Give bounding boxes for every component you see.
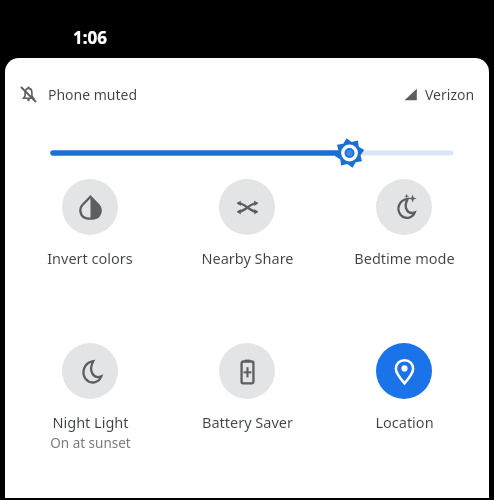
button[interactable]: Battery Saver [185, 343, 309, 432]
staticText: Battery Saver [202, 412, 293, 432]
staticText: Verizon [425, 85, 475, 104]
button[interactable]: Verizon [401, 81, 477, 108]
button[interactable]: Phone muted [17, 81, 140, 108]
staticText: On at sunset [50, 434, 131, 452]
staticText: Nearby Share [201, 248, 294, 268]
button[interactable]: Location [342, 343, 466, 432]
staticText: Invert colors [47, 248, 133, 268]
button[interactable]: Bedtime mode [342, 179, 466, 268]
staticText: Night Light [52, 412, 129, 432]
button[interactable]: Nearby Share [185, 179, 309, 268]
button[interactable]: Brightness [39, 134, 455, 172]
staticText: Bedtime mode [354, 248, 455, 268]
staticText: 1:06 [73, 26, 107, 49]
button[interactable]: Invert colors [28, 179, 152, 268]
staticText: Phone muted [48, 85, 138, 104]
button[interactable]: Night Light [28, 343, 152, 452]
staticText: Location [375, 412, 434, 432]
